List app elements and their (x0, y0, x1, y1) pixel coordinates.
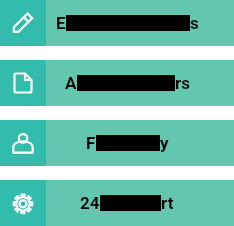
button[interactable]: Support (0, 180, 234, 226)
button[interactable]: Family (0, 120, 234, 166)
staticText: F (86, 133, 96, 153)
staticText: rt (161, 193, 174, 213)
button[interactable]: Documents (0, 60, 234, 106)
staticText: A (65, 73, 77, 93)
other: Support (0, 180, 46, 226)
staticText: 24 (80, 193, 100, 213)
staticText: y (160, 133, 169, 153)
other: Documents (0, 60, 46, 106)
other: Family (0, 120, 46, 166)
staticText: s (190, 13, 199, 33)
button[interactable]: Edit (0, 0, 234, 46)
staticText: rs (175, 73, 190, 93)
staticText: E (56, 13, 66, 33)
other: Edit (0, 0, 46, 46)
